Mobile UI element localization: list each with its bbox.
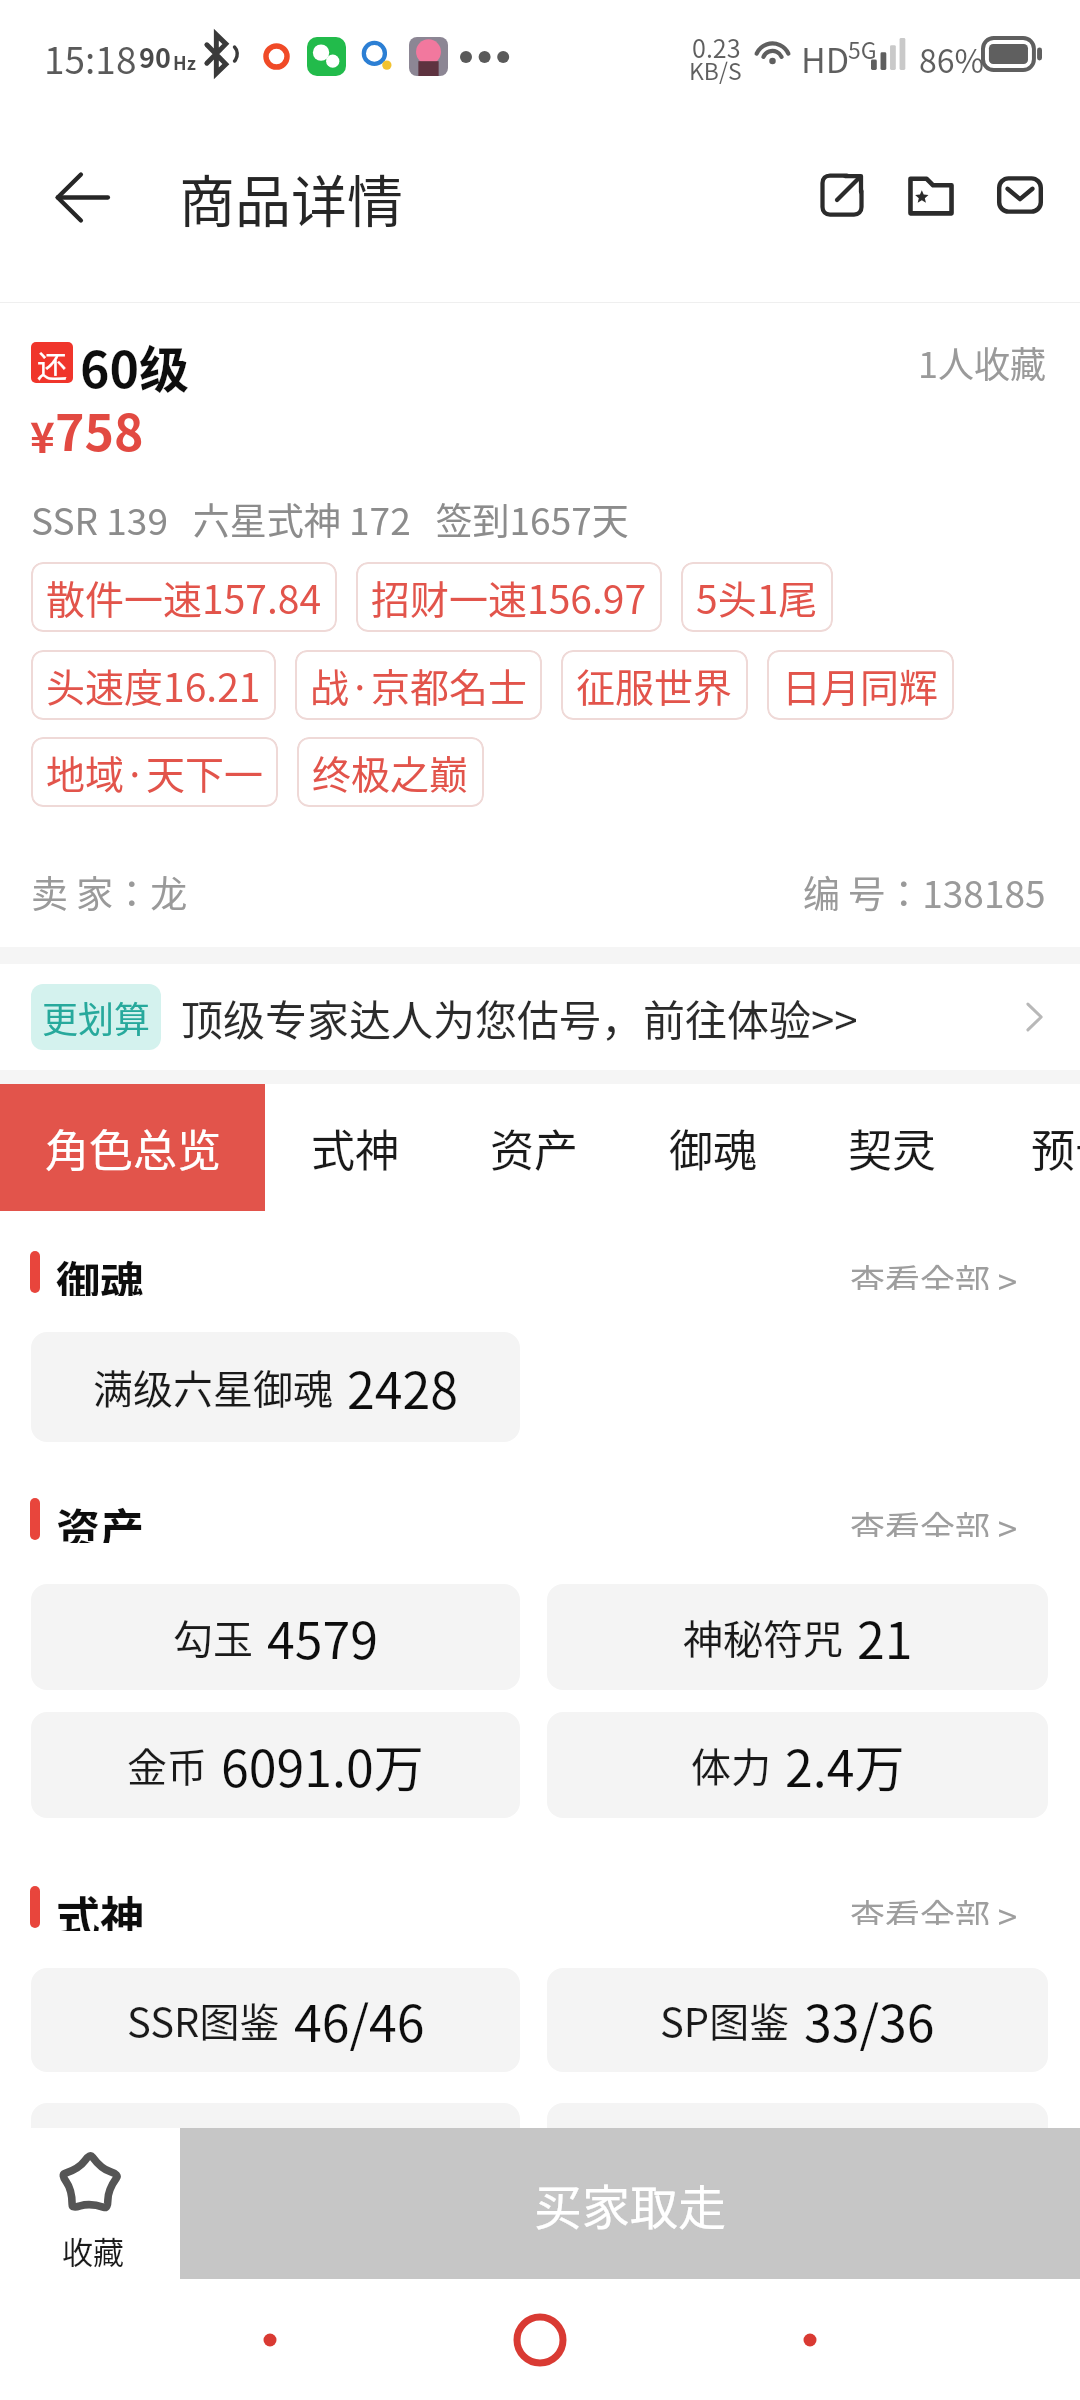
staticText: 御魂: [56, 1248, 144, 1296]
staticText: HD: [801, 34, 850, 83]
staticText: 33/36: [804, 1984, 935, 2056]
staticText: 招财一速156.97: [371, 569, 647, 625]
button[interactable]: 头速度16.21: [31, 650, 276, 720]
button[interactable]: 买家取走: [180, 2128, 1080, 2279]
staticText: 征服世界: [576, 657, 733, 713]
staticText: 预卡: [1031, 1116, 1080, 1180]
button[interactable]: 预卡: [981, 1084, 1080, 1211]
button[interactable]: Favorites: [881, 145, 981, 245]
button[interactable]: 地域·天下一: [31, 737, 278, 807]
button[interactable]: Messages: [970, 145, 1070, 245]
staticText: ¥: [30, 404, 55, 465]
staticText: 买家取走: [534, 2169, 727, 2239]
staticText: 查看全部 >: [850, 1254, 1018, 1290]
staticText: 5G: [848, 32, 877, 65]
button[interactable]: 查看全部 >: [846, 1495, 1022, 1543]
staticText: 查看全部 >: [850, 1501, 1018, 1537]
staticText: 收藏: [62, 2228, 124, 2273]
staticText: 90: [139, 37, 171, 76]
staticText: 查看全部 >: [850, 1889, 1018, 1925]
staticText: 60级: [80, 330, 189, 394]
button[interactable]: 战·京都名士: [295, 650, 542, 720]
button[interactable]: 收藏: [0, 2128, 180, 2279]
button[interactable]: 御魂: [623, 1084, 802, 1211]
staticText: 战·京都名士: [310, 657, 527, 713]
button[interactable]: 资产: [444, 1084, 623, 1211]
staticText: 5头1尾: [696, 569, 818, 625]
staticText: 2428: [347, 1351, 458, 1423]
staticText: 式神: [311, 1116, 399, 1180]
staticText: 2.4万: [785, 1729, 905, 1801]
staticText: 角色总览: [45, 1116, 221, 1180]
staticText: 1人收藏: [918, 336, 1046, 388]
button[interactable]: 招财一速156.97: [356, 562, 662, 632]
staticText: 散件一速157.84: [46, 569, 322, 625]
staticText: 契灵: [848, 1116, 936, 1180]
button[interactable]: 查看全部 >: [846, 1248, 1022, 1296]
staticText: 21: [857, 1601, 913, 1673]
staticText: 0.23: [692, 29, 741, 65]
button[interactable]: 体力: [547, 1712, 1048, 1818]
button[interactable]: 更划算: [0, 964, 1080, 1070]
button[interactable]: [547, 2103, 1048, 2207]
staticText: 15:18: [44, 31, 137, 85]
staticText: 顶级专家达人为您估号，前往体验>>: [181, 987, 858, 1048]
staticText: 商品详情: [179, 157, 403, 238]
button[interactable]: 金币: [31, 1712, 520, 1818]
staticText: 满级六星御魂: [93, 1358, 333, 1416]
button[interactable]: 神秘符咒: [547, 1584, 1048, 1690]
button[interactable]: 5头1尾: [681, 562, 833, 632]
button[interactable]: 满级六星御魂: [31, 1332, 520, 1442]
staticText: 还: [37, 342, 67, 383]
staticText: 金币: [127, 1736, 207, 1794]
staticText: 终极之巅: [312, 744, 469, 800]
button[interactable]: 角色总览: [0, 1084, 265, 1211]
staticText: KB/S: [689, 53, 742, 86]
staticText: 编 号：138185: [803, 865, 1046, 919]
staticText: SSR 139 六星式神 172 签到1657天: [31, 492, 629, 546]
staticText: 地域·天下一: [46, 744, 263, 800]
staticText: 86%: [919, 36, 984, 82]
staticText: 资产: [490, 1116, 578, 1180]
button[interactable]: Back: [22, 137, 142, 257]
staticText: 758: [55, 393, 144, 465]
button[interactable]: [31, 2103, 520, 2207]
button[interactable]: 式神: [265, 1084, 444, 1211]
staticText: 6091.0万: [221, 1729, 424, 1801]
staticText: 卖 家：龙: [31, 865, 188, 919]
staticText: 更划算: [42, 991, 151, 1043]
staticText: SP图鉴: [660, 1991, 790, 2049]
button[interactable]: 终极之巅: [297, 737, 484, 807]
staticText: 日月同辉: [782, 657, 939, 713]
button[interactable]: SP图鉴: [547, 1968, 1048, 2072]
staticText: SSR图鉴: [127, 1991, 280, 2049]
staticText: 御魂: [669, 1116, 757, 1180]
staticText: 头速度16.21: [46, 657, 261, 713]
staticText: 体力: [691, 1736, 771, 1794]
staticText: 资产: [56, 1495, 144, 1543]
button[interactable]: 散件一速157.84: [31, 562, 337, 632]
button[interactable]: 勾玉: [31, 1584, 520, 1690]
staticText: 式神: [56, 1883, 144, 1931]
button[interactable]: 征服世界: [561, 650, 748, 720]
staticText: 46/46: [294, 1984, 425, 2056]
staticText: 神秘符咒: [683, 1608, 843, 1666]
button[interactable]: SSR图鉴: [31, 1968, 520, 2072]
staticText: 勾玉: [173, 1608, 253, 1666]
button[interactable]: 契灵: [802, 1084, 981, 1211]
button[interactable]: 查看全部 >: [846, 1883, 1022, 1931]
button[interactable]: 日月同辉: [767, 650, 954, 720]
staticText: 4579: [267, 1601, 378, 1673]
button[interactable]: Share: [792, 145, 892, 245]
staticText: Hz: [173, 49, 196, 75]
